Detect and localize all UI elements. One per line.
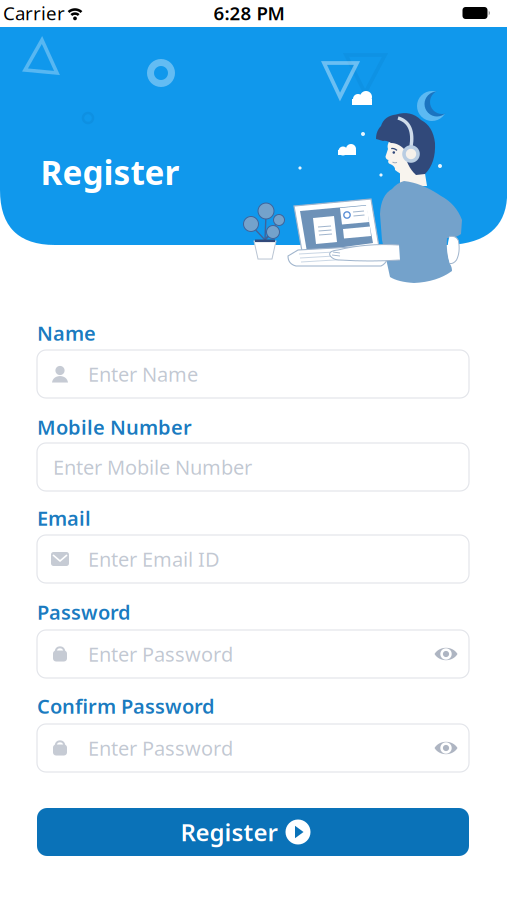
staticText: 6:28 PM (213, 1, 284, 25)
staticText: Enter Email ID (88, 546, 220, 572)
staticText: Password (37, 599, 131, 625)
button[interactable]: Register (37, 808, 469, 856)
staticText: Enter Mobile Number (53, 454, 252, 480)
button[interactable]: Enter Mobile Number (37, 443, 469, 491)
button[interactable]: Enter Confirm Password (37, 724, 469, 772)
staticText: Enter Password (88, 735, 233, 761)
staticText: Name (37, 320, 96, 346)
staticText: Register (40, 150, 179, 194)
button[interactable]: Enter Email ID (37, 535, 469, 583)
staticText: Register (180, 816, 277, 848)
staticText: Confirm Password (37, 693, 215, 719)
staticText: Carrier (3, 1, 65, 25)
staticText: Enter Name (88, 361, 198, 387)
staticText: Mobile Number (37, 414, 192, 440)
button[interactable]: Enter Name (37, 350, 469, 398)
staticText: Email (37, 505, 91, 531)
button[interactable]: Show password (431, 733, 461, 763)
staticText: Enter Password (88, 641, 233, 667)
button[interactable]: Enter Password (37, 630, 469, 678)
button[interactable]: Show password (431, 639, 461, 669)
